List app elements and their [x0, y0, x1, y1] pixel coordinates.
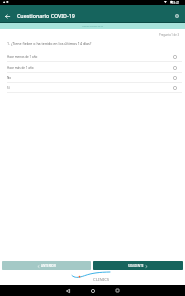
button[interactable]: Back [0, 9, 15, 24]
staticText: 18:47 [172, 1, 180, 5]
button[interactable]: Hace más de 1 año [0, 63, 185, 73]
button[interactable]: Hace menos de 1 año [0, 52, 185, 62]
staticText: Hace menos de 1 año [7, 55, 38, 59]
staticText: Pregunta 1 de 3 [159, 33, 179, 37]
staticText: Tiempo restante 29:55 [82, 25, 104, 28]
staticText: No [7, 76, 12, 80]
button[interactable]: Help [169, 8, 184, 23]
staticText: Hace más de 1 año [7, 66, 34, 70]
button[interactable]: ANTERIOR [2, 261, 91, 270]
button[interactable]: Sí [0, 83, 185, 93]
button[interactable]: Recents [112, 285, 123, 296]
staticText: SIGUIENTE [128, 264, 144, 268]
staticText: Cuestionario COVID-19 [17, 12, 75, 19]
button[interactable]: SIGUIENTE [93, 261, 183, 270]
button[interactable]: Home [87, 285, 98, 296]
button[interactable]: Back [62, 285, 73, 296]
staticText: Sí [7, 86, 10, 90]
staticText: ANTERIOR [41, 264, 56, 268]
button[interactable]: No [0, 73, 185, 83]
staticText: CLINICS [93, 276, 110, 282]
staticText: 1. ¿Tiene fiebre o ha tenido en los últi… [7, 41, 92, 46]
